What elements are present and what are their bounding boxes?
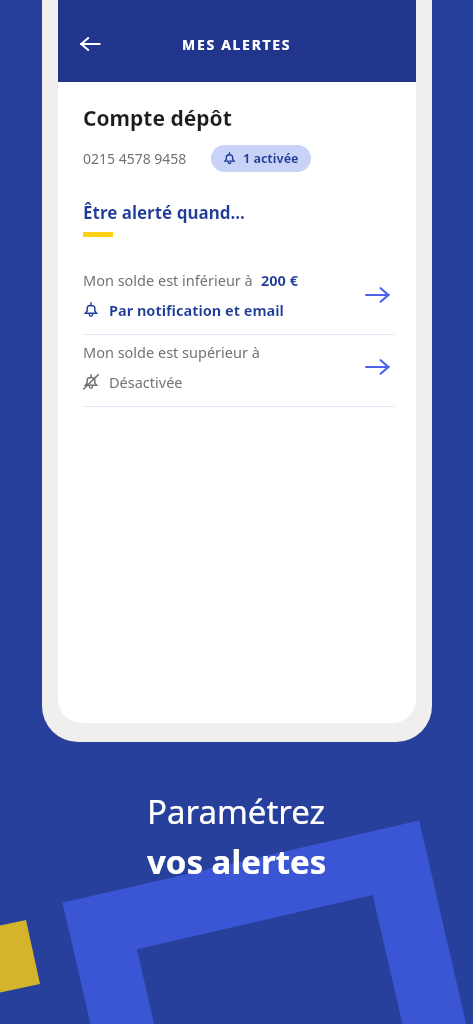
staticText: vos alertes (147, 839, 327, 884)
staticText: Mon solde est inférieur à (83, 270, 257, 290)
button[interactable]: Mon solde est inférieur à (58, 263, 416, 334)
staticText: Compte dépôt (83, 104, 232, 133)
button[interactable]: Mon solde est supérieur à (58, 335, 416, 406)
staticText: 200 € (261, 270, 298, 290)
button[interactable]: Back (68, 22, 112, 66)
staticText: Désactivée (109, 372, 183, 392)
button[interactable]: 1 activée (211, 145, 311, 172)
staticText: Être alerté quand... (83, 201, 245, 224)
staticText: Par notification et email (109, 300, 284, 320)
staticText: 1 activée (243, 150, 299, 167)
staticText: Paramétrez (147, 789, 326, 834)
staticText: Mon solde est supérieur à (83, 342, 260, 362)
staticText: MES ALERTES (182, 35, 292, 54)
staticText: 0215 4578 9458 (83, 149, 187, 168)
